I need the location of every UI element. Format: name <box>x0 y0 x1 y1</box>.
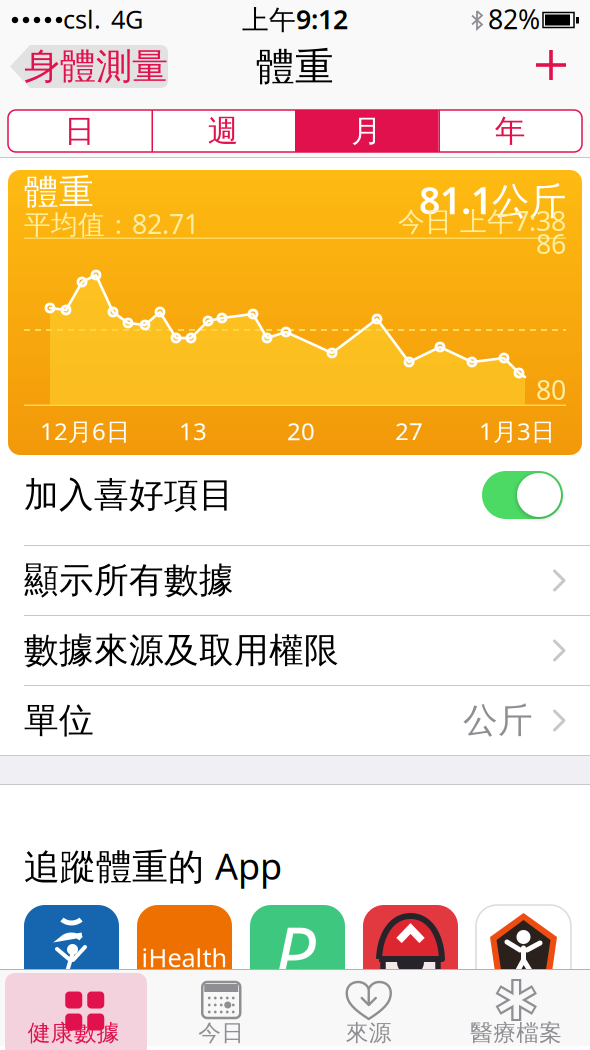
staticText: 週 <box>208 112 239 150</box>
staticText: 數據來源及取用權限 <box>24 629 339 672</box>
staticText: P <box>273 903 315 1002</box>
staticText: 公斤 <box>463 699 533 742</box>
staticText: 顯示所有數據 <box>24 559 234 602</box>
staticText: 年 <box>495 112 526 150</box>
staticText: 平均值：82.71 <box>24 206 199 241</box>
staticText: 80 <box>536 372 566 407</box>
staticText: 單位 <box>24 699 94 742</box>
staticText: 日 <box>64 112 95 150</box>
staticText: 今日 上午7:38 <box>398 203 566 238</box>
staticText: iHealth <box>141 941 227 974</box>
staticText: csl. <box>63 2 101 36</box>
staticText: 身體測量 <box>24 44 168 89</box>
staticText: 體重 <box>24 171 94 214</box>
staticText: 加入喜好項目 <box>24 474 234 516</box>
staticText: 今日 <box>198 1019 244 1047</box>
staticText: 20 <box>287 415 315 447</box>
staticText: 12月6日 <box>40 415 130 447</box>
staticText: 4G <box>111 2 143 36</box>
staticText: 1月3日 <box>479 415 555 447</box>
staticText: 來源 <box>346 1019 392 1047</box>
staticText: 體重 <box>256 43 334 91</box>
staticText: 82% <box>488 1 540 37</box>
staticText: 上午9:12 <box>242 1 348 37</box>
staticText: 月 <box>351 112 382 150</box>
staticText: 醫療檔案 <box>470 1019 562 1047</box>
staticText: 86 <box>536 226 566 261</box>
staticText: 81.1公斤 <box>419 175 566 225</box>
staticText: 27 <box>395 415 423 447</box>
staticText: 健康數據 <box>28 1019 120 1047</box>
staticText: 13 <box>179 415 207 447</box>
staticText: 追蹤體重的 App <box>24 842 282 890</box>
